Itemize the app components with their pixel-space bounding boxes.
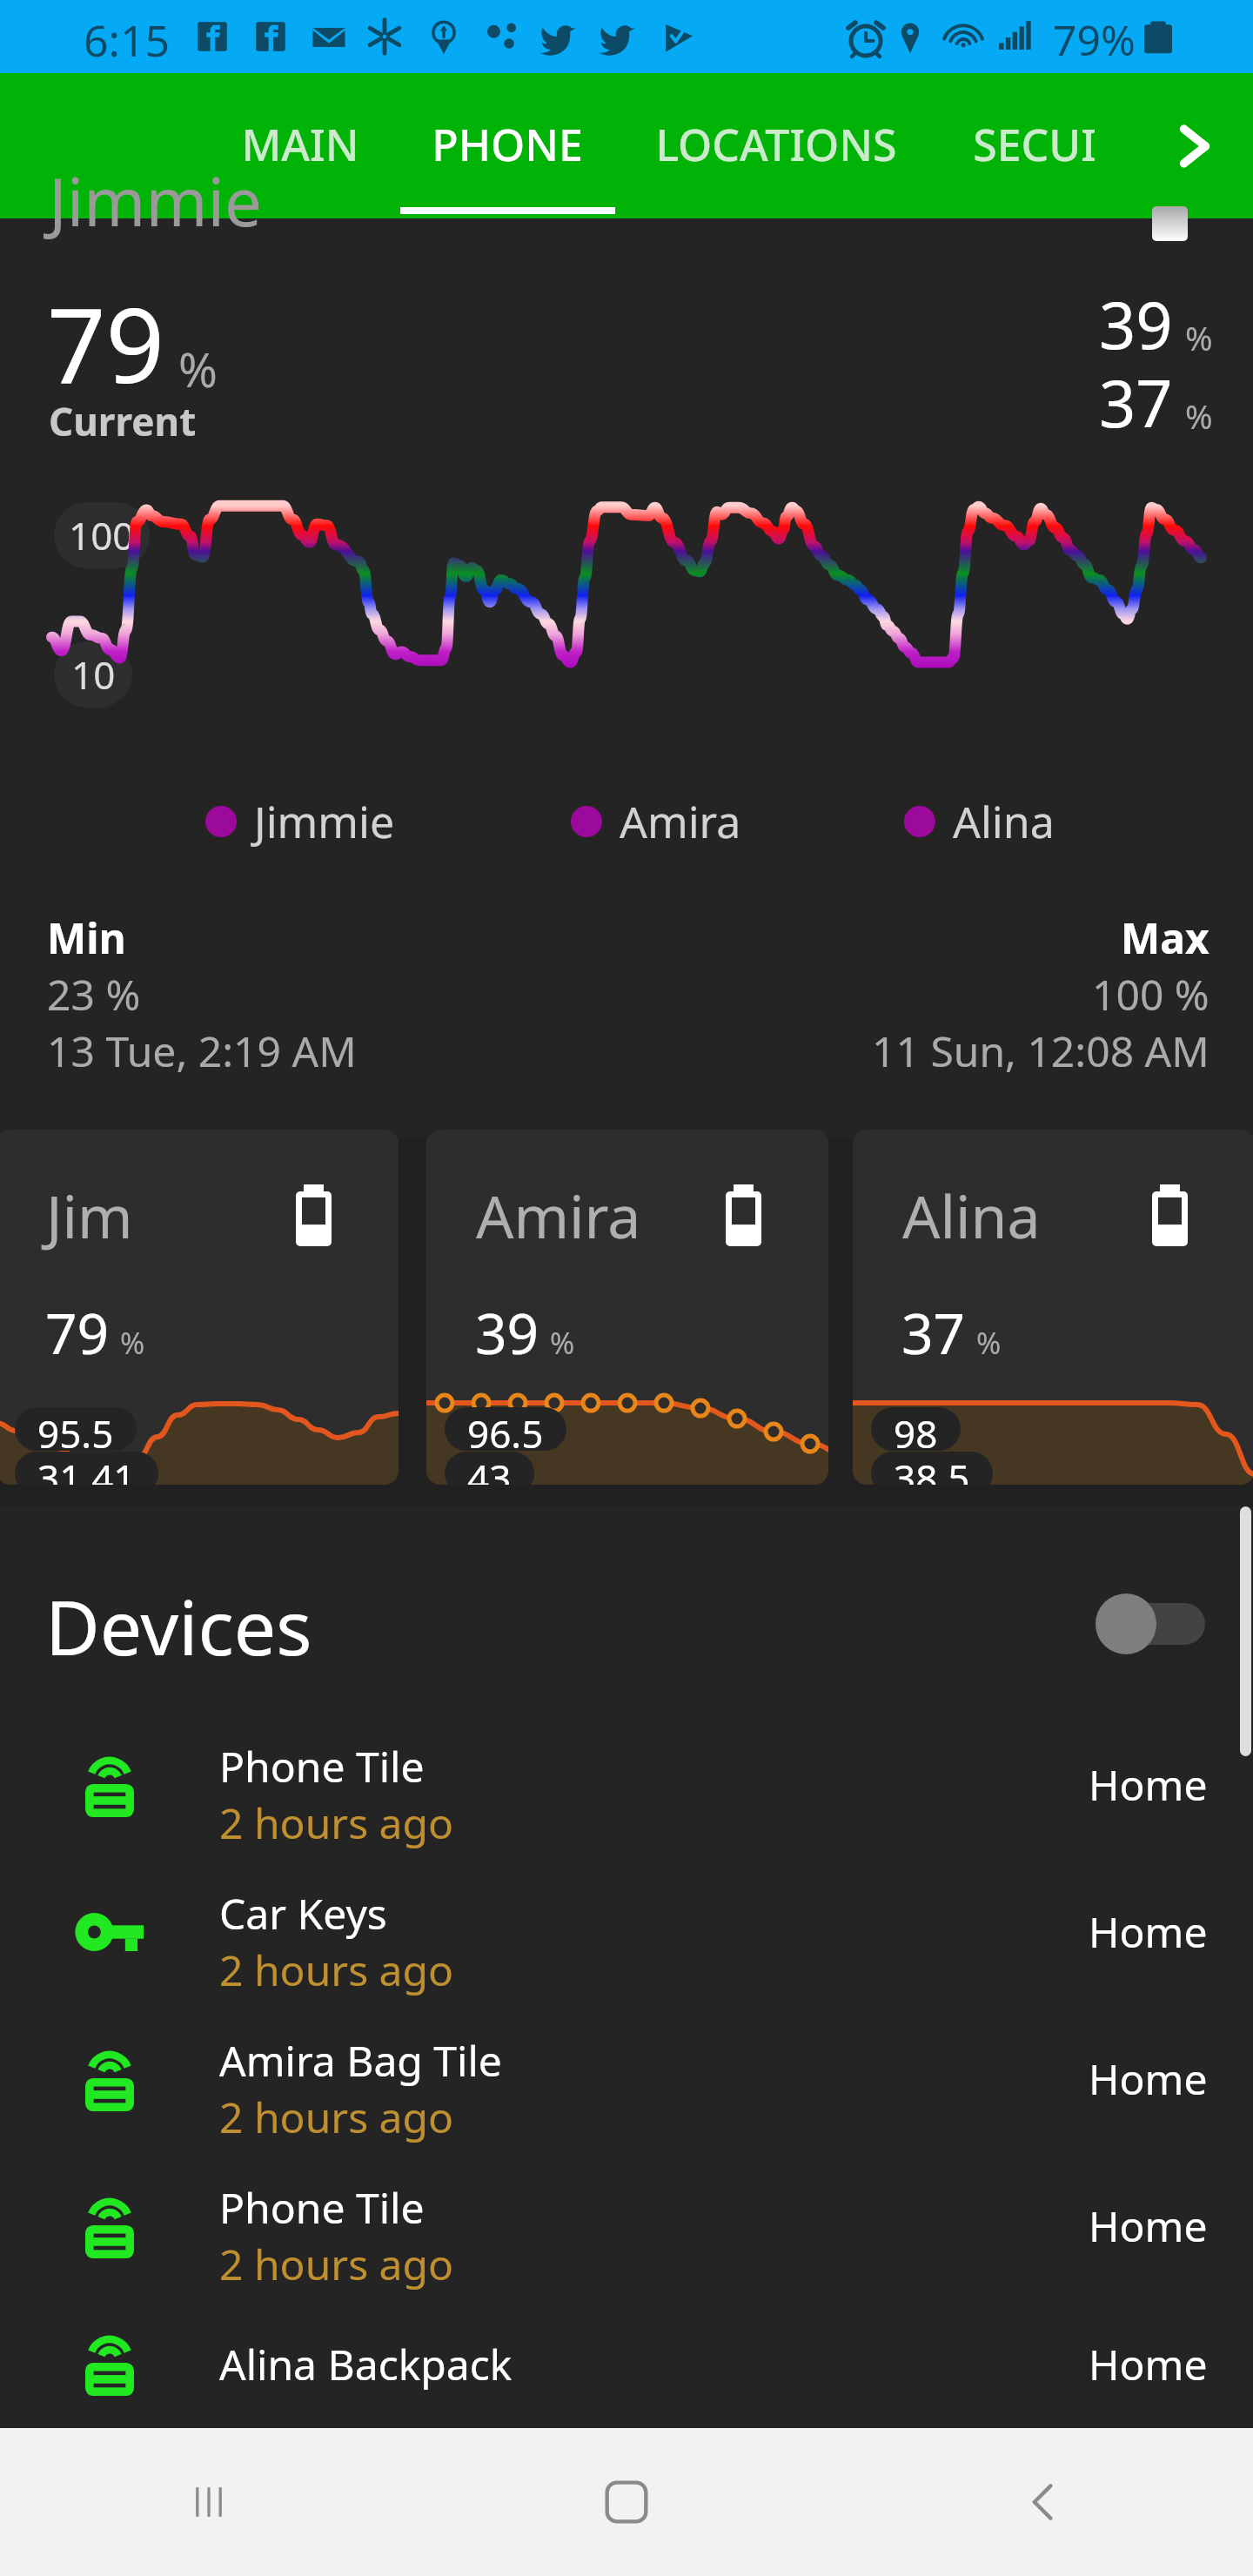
button[interactable]: Alina Backpack (0, 2299, 1253, 2428)
staticText: Amira (620, 792, 741, 851)
staticText: Phone Tile (219, 2179, 425, 2236)
staticText: 38.5 (894, 1452, 970, 1485)
staticText: % (976, 1323, 1002, 1363)
button[interactable]: Alina (904, 792, 1055, 851)
button[interactable]: Jimmie (205, 792, 395, 851)
staticText: Home (1089, 2336, 1208, 2392)
staticText: 79 (45, 1295, 110, 1371)
staticText: 10 (71, 648, 116, 701)
staticText: 31.41 (37, 1452, 136, 1485)
staticText: Alina (953, 792, 1055, 851)
button[interactable]: MAIN (205, 73, 395, 218)
staticText: 2 hours ago (219, 1942, 454, 1998)
button[interactable]: Phone Tile (0, 2152, 1253, 2299)
staticText: % (178, 337, 218, 401)
staticText: Home (1089, 2197, 1208, 2254)
button[interactable]: PHONE (395, 73, 620, 218)
button[interactable]: More tabs (1136, 73, 1253, 218)
staticText: Jimmie (49, 156, 262, 246)
button[interactable]: SECUI (933, 73, 1136, 218)
staticText: Amira Bag Tile (219, 2032, 502, 2089)
staticText: 11 Sun, 12:08 AM (872, 1023, 1209, 1079)
staticText: SECUI (973, 115, 1096, 174)
staticText: 100 (69, 509, 135, 561)
staticText: 39 (1099, 280, 1173, 368)
staticText: 13 Tue, 2:19 AM (47, 1023, 357, 1079)
staticText: % (550, 1323, 575, 1363)
staticText: Home (1089, 1903, 1208, 1960)
staticText: Amira (476, 1175, 641, 1256)
staticText: Home (1089, 1756, 1208, 1813)
staticText: % (120, 1323, 145, 1363)
staticText: MAIN (241, 115, 359, 174)
button[interactable]: Phone Tile (0, 1711, 1253, 1858)
staticText: Jimmie (254, 792, 395, 851)
button[interactable]: Back (835, 2428, 1253, 2576)
button[interactable]: Amira (426, 1130, 828, 1485)
staticText: 79 (47, 273, 164, 413)
staticText: 6:15 (84, 10, 171, 70)
staticText: % (1185, 315, 1213, 360)
staticText: 23 % (47, 966, 141, 1023)
staticText: Max (1121, 909, 1209, 966)
staticText: 100 % (1092, 966, 1209, 1023)
staticText: Car Keys (219, 1885, 387, 1942)
staticText: PHONE (432, 115, 583, 174)
staticText: Jim (46, 1175, 133, 1256)
staticText: 2 hours ago (219, 2236, 454, 2292)
staticText: 96.5 (467, 1407, 544, 1451)
staticText: 37 (1099, 359, 1173, 446)
staticText: Phone Tile (219, 1738, 425, 1794)
staticText: 2 hours ago (219, 1794, 454, 1851)
staticText: Devices (45, 1575, 312, 1677)
button[interactable]: Amira Bag Tile (0, 2005, 1253, 2152)
staticText: 98 (894, 1407, 938, 1451)
staticText: Home (1089, 2050, 1208, 2107)
button[interactable]: Toggle devices (1096, 1593, 1205, 1654)
button[interactable]: Jim (0, 1130, 399, 1485)
staticText: Min (47, 909, 126, 966)
button[interactable]: Car Keys (0, 1858, 1253, 2005)
button[interactable]: Home (418, 2428, 835, 2576)
button[interactable]: Amira (571, 792, 741, 851)
staticText: 43 (467, 1452, 512, 1485)
staticText: 79% (1053, 11, 1136, 68)
button[interactable]: LOCATIONS (620, 73, 933, 218)
staticText: % (1185, 393, 1213, 439)
staticText: Alina (902, 1175, 1041, 1256)
button[interactable]: Recent apps (0, 2428, 418, 2576)
staticText: 2 hours ago (219, 2089, 454, 2145)
staticText: Current (49, 395, 197, 447)
staticText: 37 (901, 1295, 966, 1371)
staticText: 39 (475, 1295, 539, 1371)
button[interactable]: Alina (853, 1130, 1253, 1485)
staticText: Alina Backpack (219, 2336, 513, 2392)
staticText: 95.5 (37, 1407, 114, 1451)
staticText: LOCATIONS (655, 115, 897, 174)
